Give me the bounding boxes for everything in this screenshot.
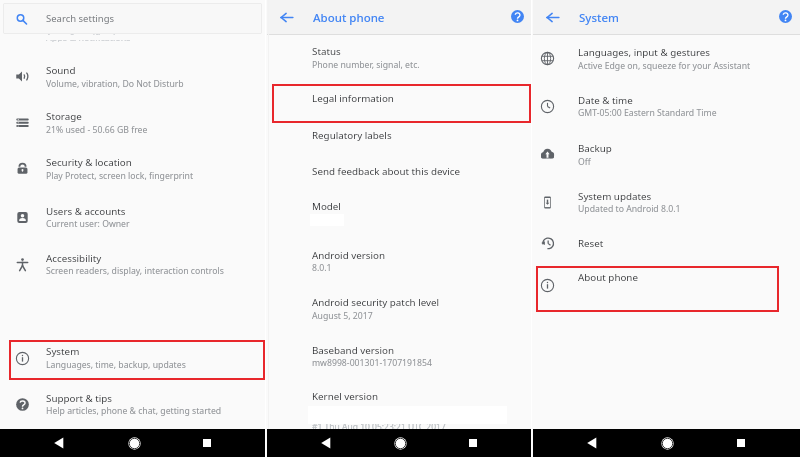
staticText: Apps & notifications <box>46 31 131 43</box>
button[interactable] <box>267 121 532 156</box>
button[interactable] <box>267 336 532 382</box>
staticText: About phone <box>578 271 638 284</box>
button[interactable] <box>267 241 532 287</box>
button[interactable] <box>533 38 800 84</box>
button[interactable]: Recent apps <box>195 431 219 455</box>
staticText: Updated to Android 8.0.1 <box>578 203 681 215</box>
button[interactable] <box>0 102 266 148</box>
button[interactable] <box>267 37 532 83</box>
button[interactable] <box>267 84 532 121</box>
staticText: Backup <box>578 142 612 155</box>
button[interactable] <box>533 263 800 309</box>
staticText: Current user: Owner <box>46 218 130 230</box>
staticText: Legal information <box>312 92 394 105</box>
staticText: Regulatory labels <box>312 129 392 142</box>
button[interactable]: Home <box>655 431 679 455</box>
staticText: Screen readers, display, interaction con… <box>46 265 224 277</box>
button[interactable] <box>533 182 800 228</box>
staticText: Languages, input & gestures <box>578 46 711 59</box>
button[interactable] <box>267 192 532 238</box>
staticText: Sound <box>46 64 76 77</box>
staticText: Android version <box>312 249 385 262</box>
button[interactable]: Navigate up <box>272 3 301 32</box>
staticText: #1 Thu Aug 10 05:23:21 UTC 2017 <box>312 421 446 433</box>
button[interactable] <box>533 86 800 132</box>
button[interactable] <box>0 197 266 243</box>
staticText: Languages, time, backup, updates <box>46 359 186 371</box>
staticText: Send feedback about this device <box>312 165 461 178</box>
staticText: Date & time <box>578 94 633 107</box>
button[interactable] <box>0 384 266 430</box>
staticText: Active Edge on, squeeze for your Assista… <box>578 60 751 72</box>
staticText: Phone number, signal, etc. <box>312 59 420 71</box>
staticText: August 5, 2017 <box>312 310 373 322</box>
button[interactable] <box>0 56 266 102</box>
button[interactable]: Home <box>388 431 412 455</box>
button[interactable] <box>3 3 262 34</box>
button[interactable]: Back <box>580 431 604 455</box>
staticText: Kernel version <box>312 390 379 403</box>
button[interactable]: Navigate up <box>538 3 567 32</box>
button[interactable]: Recent apps <box>461 431 485 455</box>
button[interactable] <box>0 148 266 194</box>
staticText: mw8998-001301-1707191854 <box>312 357 432 369</box>
staticText: Status <box>312 45 341 58</box>
button[interactable] <box>267 157 532 192</box>
button[interactable]: Back <box>314 431 338 455</box>
staticText: GMT-05:00 Eastern Standard Time <box>578 107 717 119</box>
staticText: Model <box>312 200 341 213</box>
staticText: Security & location <box>46 156 132 169</box>
button[interactable] <box>0 244 266 290</box>
staticText: Volume, vibration, Do Not Disturb <box>46 78 184 90</box>
staticText: Android security patch level <box>312 296 440 309</box>
staticText: Support & tips <box>46 392 113 405</box>
button[interactable] <box>533 229 800 265</box>
button[interactable] <box>267 382 532 428</box>
staticText: Play Protect, screen lock, fingerprint <box>46 170 194 182</box>
staticText: System updates <box>578 190 652 203</box>
button[interactable]: Help <box>772 3 799 30</box>
staticText: System <box>46 345 80 358</box>
button[interactable]: Recent apps <box>729 431 753 455</box>
staticText: Reset <box>578 237 604 250</box>
button[interactable] <box>267 288 532 334</box>
staticText: Users & accounts <box>46 205 126 218</box>
staticText: Help articles, phone & chat, getting sta… <box>46 405 222 417</box>
staticText: Accessibility <box>46 252 102 265</box>
button[interactable]: Home <box>122 431 146 455</box>
button[interactable] <box>0 337 266 383</box>
button[interactable]: Help <box>504 3 531 30</box>
staticText: 21% used - 50.66 GB free <box>46 124 148 136</box>
button[interactable] <box>0 36 266 44</box>
staticText: Search settings <box>46 12 115 25</box>
staticText: Baseband version <box>312 344 394 357</box>
button[interactable] <box>533 134 800 180</box>
button[interactable]: Back <box>47 431 71 455</box>
staticText: About phone <box>313 10 385 26</box>
staticText: 8.0.1 <box>312 262 332 274</box>
staticText: Off <box>578 156 591 168</box>
staticText: System <box>579 10 619 26</box>
staticText: Storage <box>46 110 82 123</box>
